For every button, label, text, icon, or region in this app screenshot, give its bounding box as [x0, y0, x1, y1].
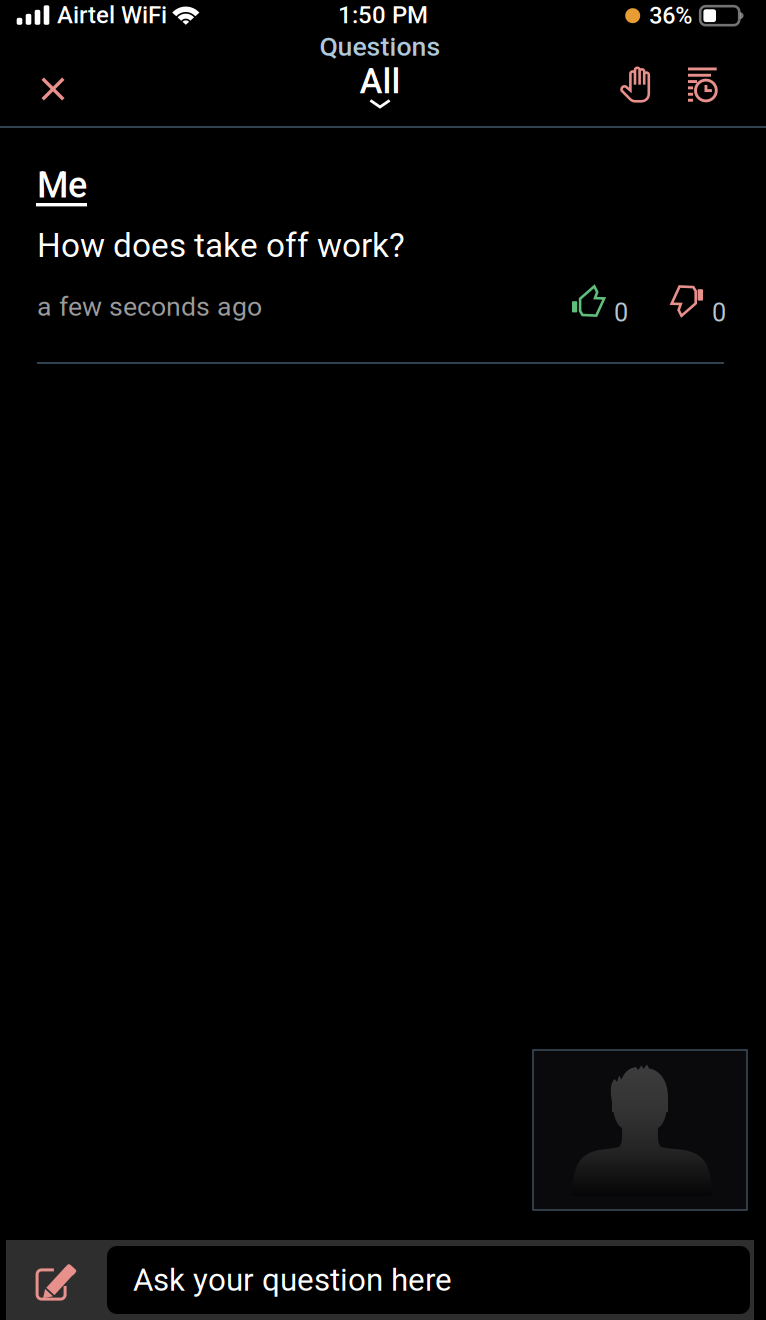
button[interactable]: Compose	[6, 1240, 107, 1320]
staticText: Ask your question here	[133, 1262, 452, 1298]
staticText: 36%	[649, 2, 692, 29]
staticText: All	[359, 61, 400, 102]
button[interactable]: Downvote	[670, 285, 728, 317]
button[interactable]: Upvote	[572, 285, 630, 317]
button[interactable]: Questions	[290, 31, 470, 113]
staticText: Airtel WiFi	[57, 1, 167, 29]
button[interactable]: Ask your question here	[107, 1246, 750, 1314]
staticText: 1:50 PM	[338, 1, 428, 29]
staticText: a few seconds ago	[37, 291, 262, 322]
staticText: 0	[712, 298, 726, 328]
staticText: 0	[614, 298, 628, 328]
button[interactable]: Raise hand	[611, 60, 661, 110]
button[interactable]: Question history	[679, 58, 729, 108]
button[interactable]: Me	[37, 164, 92, 209]
staticText: Me	[37, 164, 87, 206]
button[interactable]: Close	[16, 52, 90, 126]
staticText: How does take off work?	[37, 226, 405, 265]
staticText: Questions	[319, 31, 440, 62]
